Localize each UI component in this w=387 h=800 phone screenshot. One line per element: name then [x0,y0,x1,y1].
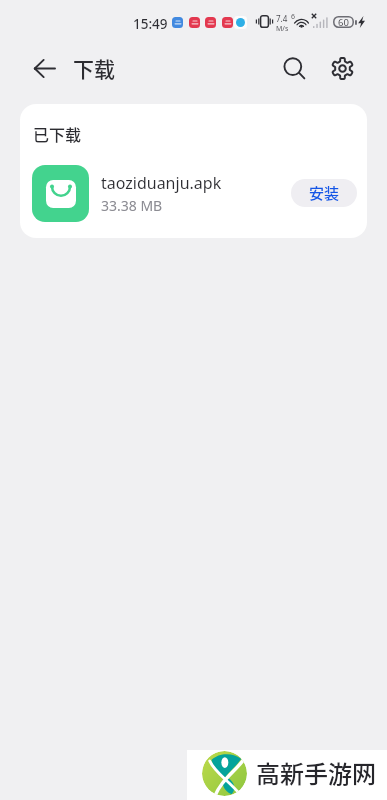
staticText: 15:49 [133,15,168,33]
button[interactable]: Search [272,46,317,91]
button[interactable]: Settings [320,46,365,91]
staticText: 下载 [73,53,115,83]
staticText: taoziduanju.apk [101,172,222,194]
staticText: 安装 [309,182,340,204]
staticText: 高新手游网 [256,755,376,790]
staticText: M/s [276,24,289,34]
staticText: 7.4 [276,13,288,24]
button[interactable]: 安装 [291,179,357,207]
staticText: 已下载 [33,122,82,145]
staticText: 33.38 MB [101,196,163,215]
staticText: 60 [338,16,349,28]
staticText: 6 [291,12,296,22]
button[interactable]: Back [22,46,67,91]
